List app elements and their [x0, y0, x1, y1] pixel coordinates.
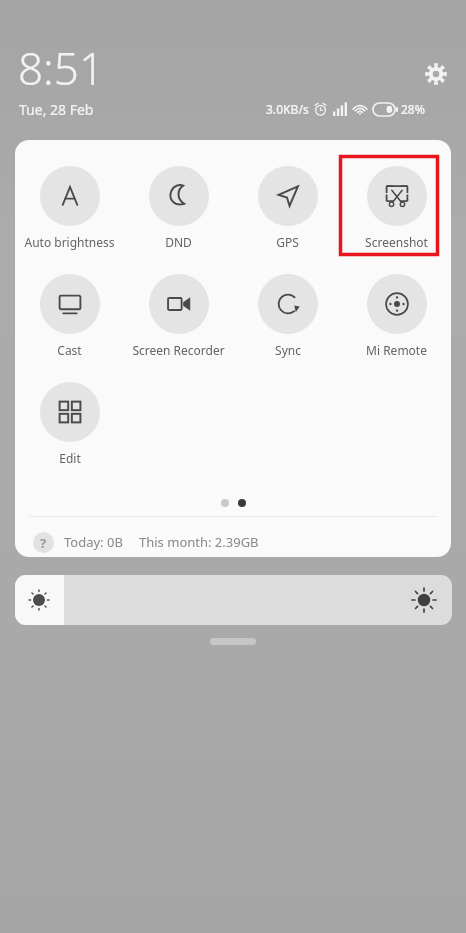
staticText: 3.0KB/s: [266, 101, 309, 117]
button[interactable]: DND: [124, 166, 233, 250]
button[interactable]: Auto brightness: [15, 166, 124, 250]
staticText: DND: [165, 234, 192, 250]
button[interactable]: Cast: [15, 274, 124, 358]
staticText: ?: [40, 534, 47, 552]
button[interactable]: Settings: [420, 58, 452, 90]
button[interactable]: Brightness: [15, 575, 452, 625]
button[interactable]: Sync: [233, 274, 342, 358]
staticText: Cast: [57, 342, 82, 358]
button[interactable]: ?: [15, 527, 451, 557]
button[interactable]: Screenshot: [342, 166, 451, 250]
staticText: Edit: [59, 450, 81, 466]
button[interactable]: Edit: [15, 382, 124, 466]
staticText: Screenshot: [365, 234, 428, 250]
staticText: 28%: [401, 101, 425, 117]
staticText: Today: 0B: [64, 533, 123, 551]
staticText: This month: 2.39GB: [139, 533, 259, 551]
staticText: Mi Remote: [366, 342, 427, 358]
button[interactable]: GPS: [233, 166, 342, 250]
button[interactable]: Mi Remote: [342, 274, 451, 358]
staticText: Sync: [275, 342, 301, 358]
staticText: 8:51: [18, 38, 105, 98]
button[interactable]: Screen Recorder: [124, 274, 233, 358]
staticText: Screen Recorder: [132, 342, 225, 358]
staticText: GPS: [276, 234, 299, 250]
staticText: Tue, 28 Feb: [19, 100, 94, 119]
staticText: Auto brightness: [24, 234, 115, 250]
